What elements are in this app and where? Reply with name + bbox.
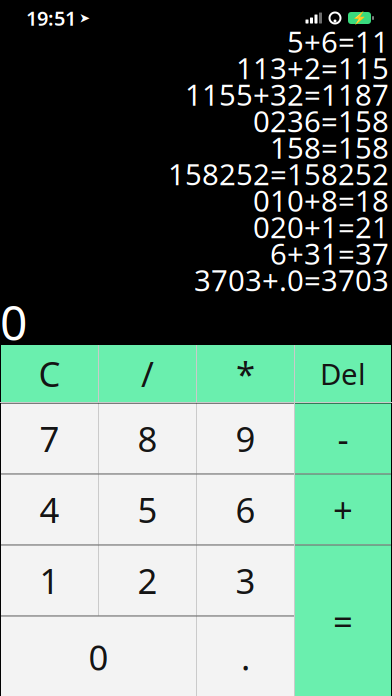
staticText: 010+8=18 — [253, 181, 389, 220]
button[interactable]: Del — [295, 345, 391, 402]
staticText: C — [38, 350, 60, 396]
button[interactable]: 7 — [1, 403, 98, 473]
staticText: - — [337, 415, 348, 461]
staticText: 0 — [0, 290, 27, 354]
staticText: Del — [320, 354, 366, 393]
button[interactable]: 4 — [1, 474, 98, 544]
staticText: 020+1=21 — [253, 207, 389, 246]
button[interactable]: C — [1, 345, 98, 402]
button[interactable]: 2 — [99, 545, 196, 615]
staticText: ⚡ — [352, 11, 367, 25]
button[interactable]: 0 — [1, 616, 196, 696]
button[interactable]: 1 — [1, 545, 98, 615]
button[interactable]: * — [197, 345, 294, 402]
button[interactable]: 3 — [197, 545, 294, 615]
staticText: 1155+32=1187 — [185, 75, 389, 114]
button[interactable]: 6 — [197, 474, 294, 544]
staticText: + — [333, 486, 353, 532]
staticText: / — [141, 350, 154, 396]
staticText: 0236=158 — [253, 101, 389, 140]
staticText: 4 — [39, 486, 59, 532]
staticText: 3 — [235, 557, 255, 603]
staticText: 158=158 — [270, 128, 389, 167]
staticText: 158252=158252 — [168, 154, 389, 193]
staticText: 6+31=37 — [270, 234, 389, 273]
staticText: ➤ — [79, 10, 90, 25]
button[interactable]: + — [295, 474, 391, 544]
button[interactable]: . — [197, 616, 294, 696]
staticText: 113+2=115 — [236, 48, 389, 87]
button[interactable]: - — [295, 403, 391, 473]
staticText: 3703+.0=3703 — [194, 260, 389, 299]
button[interactable]: = — [295, 545, 391, 696]
staticText: = — [333, 598, 353, 644]
staticText: 19:51 — [26, 5, 76, 31]
staticText: 5+6=11 — [287, 22, 389, 61]
button[interactable]: / — [99, 345, 196, 402]
staticText: 7 — [39, 415, 59, 461]
button[interactable]: 8 — [99, 403, 196, 473]
button[interactable]: 9 — [197, 403, 294, 473]
button[interactable]: 5 — [99, 474, 196, 544]
staticText: . — [241, 634, 250, 680]
staticText: 0 — [88, 634, 108, 680]
staticText: 2 — [137, 557, 157, 603]
staticText: 6 — [235, 486, 255, 532]
staticText: * — [236, 350, 255, 396]
staticText: 8 — [137, 415, 157, 461]
staticText: 5 — [137, 486, 157, 532]
staticText: 9 — [235, 415, 255, 461]
staticText: 1 — [39, 557, 59, 603]
